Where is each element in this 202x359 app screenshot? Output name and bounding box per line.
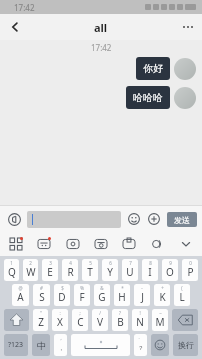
staticText: @ xyxy=(18,285,23,291)
button[interactable]: ! xyxy=(132,309,148,331)
button[interactable]: More options xyxy=(174,14,202,40)
staticText: R xyxy=(67,265,74,279)
button[interactable]: @ xyxy=(12,284,29,306)
button[interactable]: * xyxy=(114,284,130,306)
button[interactable]: + xyxy=(154,284,170,306)
staticText: ?123 xyxy=(8,340,24,350)
staticText: " xyxy=(40,310,42,316)
button[interactable]: 6 xyxy=(102,259,118,281)
button[interactable]: 4 xyxy=(62,259,78,281)
button[interactable]: # xyxy=(33,284,50,306)
button[interactable]: % xyxy=(74,284,90,306)
button[interactable]: Collapse xyxy=(176,234,196,254)
staticText: G xyxy=(98,290,106,304)
staticText: ， xyxy=(58,344,64,352)
button[interactable]: Avatar xyxy=(174,58,196,80)
staticText: ; xyxy=(79,310,81,316)
button[interactable]: " xyxy=(33,309,48,331)
staticText: S xyxy=(39,290,45,304)
staticText: 5 xyxy=(89,260,92,266)
staticText: U xyxy=(126,265,134,279)
button[interactable]: : xyxy=(52,309,68,331)
button[interactable]: - xyxy=(134,284,150,306)
button[interactable]: Emoji xyxy=(151,334,169,356)
button[interactable]: ( xyxy=(174,284,190,306)
staticText: I xyxy=(148,265,152,279)
button[interactable]: $ xyxy=(54,284,70,306)
staticText: - xyxy=(141,285,143,291)
button[interactable]: Apps xyxy=(6,234,26,254)
staticText: M xyxy=(155,315,165,329)
staticText: 发送 xyxy=(174,215,190,225)
button[interactable]: ; xyxy=(72,309,88,331)
button[interactable]: / xyxy=(92,309,108,331)
button[interactable]: 发送 xyxy=(167,212,197,227)
button[interactable]: & xyxy=(94,284,110,306)
staticText: Y xyxy=(107,265,113,279)
button[interactable]: Shift xyxy=(4,309,29,331)
staticText: T xyxy=(87,265,93,279)
staticText: V xyxy=(97,315,103,329)
button[interactable]: Favorites xyxy=(63,234,83,254)
staticText: L xyxy=(179,290,185,304)
button[interactable]: 5 xyxy=(82,259,98,281)
staticText: K xyxy=(159,290,166,304)
staticText: 1 xyxy=(10,260,13,266)
button[interactable]: 中 xyxy=(32,334,50,356)
button[interactable]: Backspace xyxy=(172,309,198,331)
staticText: / xyxy=(99,310,101,316)
staticText: A xyxy=(17,290,24,304)
staticText: H xyxy=(118,290,126,304)
button[interactable]: ? xyxy=(112,309,128,331)
button[interactable]: Card xyxy=(119,234,139,254)
button[interactable]: 3 xyxy=(42,259,58,281)
staticText: Q xyxy=(8,265,16,279)
button[interactable]: 哈哈哈 xyxy=(126,86,170,109)
staticText: 换行 xyxy=(178,340,194,350)
staticText: 中 xyxy=(37,340,46,351)
staticText: E xyxy=(47,265,53,279)
button[interactable]: Add xyxy=(146,211,162,227)
staticText: 17:42 xyxy=(14,2,35,13)
button[interactable]: Voice input xyxy=(5,210,23,228)
button[interactable]: 。 xyxy=(134,334,147,356)
staticText: ! xyxy=(139,310,141,316)
button[interactable]: 换行 xyxy=(173,334,198,356)
staticText: % xyxy=(80,285,84,291)
staticText: # xyxy=(40,285,43,291)
button[interactable]: 2 xyxy=(23,259,38,281)
staticText: ? xyxy=(119,310,121,316)
staticText: P xyxy=(187,265,194,279)
staticText: & xyxy=(100,285,104,291)
staticText: 8 xyxy=(149,260,152,266)
button[interactable]: Back xyxy=(0,14,30,40)
button[interactable]: Emoji xyxy=(126,211,142,227)
button[interactable]: 1 xyxy=(4,259,19,281)
button[interactable]: 9 xyxy=(162,259,178,281)
staticText: F xyxy=(79,290,85,304)
button[interactable]: Avatar xyxy=(174,87,196,109)
staticText: D xyxy=(58,290,66,304)
button[interactable]: Space xyxy=(71,334,130,356)
button[interactable]: Voice call xyxy=(148,234,168,254)
button[interactable]: Camera xyxy=(91,234,111,254)
button[interactable]: ~ xyxy=(152,309,168,331)
staticText: ？ xyxy=(138,344,144,352)
staticText: 你好 xyxy=(143,62,163,75)
button[interactable]: 8 xyxy=(142,259,158,281)
button[interactable]: 你好 xyxy=(136,57,170,80)
button[interactable] xyxy=(27,211,121,228)
staticText: 7 xyxy=(129,260,132,266)
button[interactable]: Sticker xyxy=(34,234,54,254)
button[interactable]: 7 xyxy=(122,259,138,281)
staticText: 哈哈哈 xyxy=(133,91,163,104)
staticText: 3 xyxy=(49,260,52,266)
button[interactable]: , xyxy=(54,334,67,356)
staticText: $ xyxy=(61,285,64,291)
button[interactable]: 0 xyxy=(182,259,198,281)
staticText: 。 xyxy=(138,335,143,341)
button[interactable]: ?123 xyxy=(4,334,28,356)
staticText: N xyxy=(136,315,144,329)
staticText: 6 xyxy=(109,260,112,266)
staticText: B xyxy=(117,315,124,329)
